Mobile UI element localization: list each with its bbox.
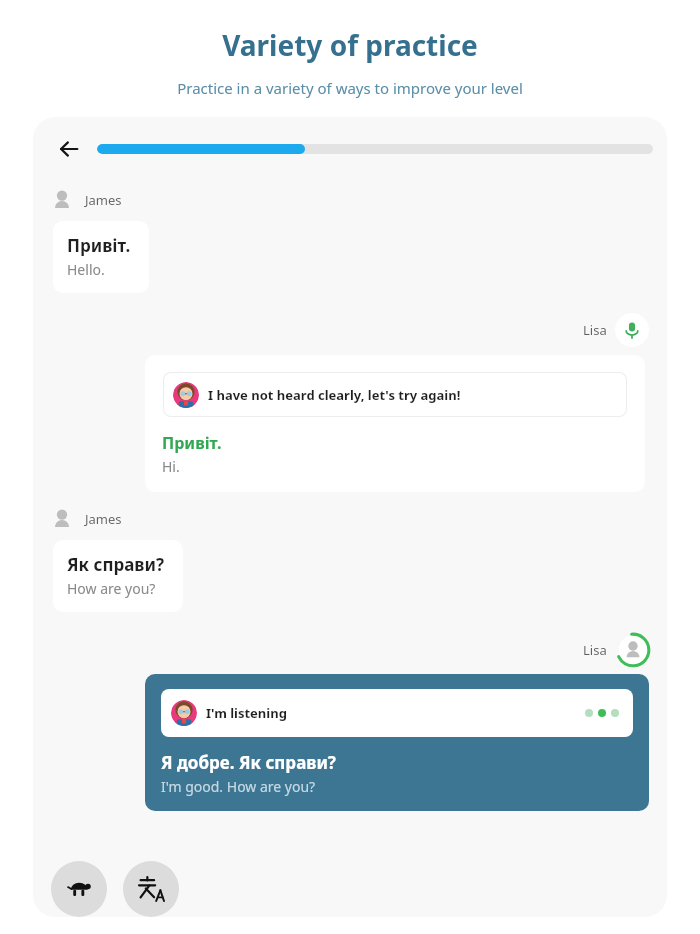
staticText: Variety of practice [0,26,700,64]
button[interactable]: Привіт. [53,221,149,293]
button[interactable]: Translate [123,861,179,917]
staticText: Привіт. [67,234,131,257]
button[interactable]: Microphone [615,313,649,347]
button[interactable]: Як справи? [53,540,183,612]
staticText: Привіт. [162,432,222,454]
staticText: Lisa [583,641,607,659]
staticText: How are you? [67,579,156,598]
staticText: James [85,191,122,209]
staticText: Hello. [67,260,105,279]
button[interactable]: I have not heard clearly, let's try agai… [145,355,645,492]
staticText: Як справи? [67,553,165,576]
button[interactable]: I'm listening [145,674,649,811]
staticText: I have not heard clearly, let's try agai… [208,386,461,404]
staticText: I'm listening [206,704,287,722]
button[interactable]: Slow speed [51,861,107,917]
staticText: Я добре. Як справи? [161,751,336,774]
staticText: Practice in a variety of ways to improve… [0,78,700,98]
staticText: James [85,510,122,528]
staticText: Lisa [583,321,607,339]
button[interactable]: Lisa recording [615,632,651,668]
staticText: Hi. [162,457,180,476]
staticText: I'm good. How are you? [161,777,316,796]
button[interactable]: Back [47,127,91,171]
